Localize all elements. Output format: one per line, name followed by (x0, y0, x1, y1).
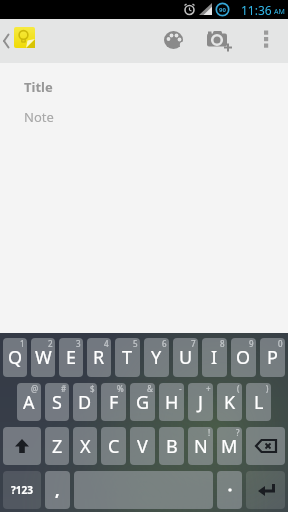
staticText: X (80, 434, 91, 459)
staticText: ! (208, 427, 211, 438)
staticText: 3 (76, 338, 81, 349)
staticText: D (78, 390, 92, 415)
button[interactable]: R (87, 338, 111, 377)
staticText: 2 (48, 338, 53, 349)
button[interactable]: J (188, 383, 213, 421)
staticText: ) (266, 383, 269, 394)
button[interactable]: Z (45, 427, 69, 465)
staticText: S (52, 390, 62, 415)
staticText: Title (24, 78, 53, 96)
button[interactable]: G (130, 383, 155, 421)
staticText: , (55, 479, 60, 501)
staticText: ? (236, 427, 240, 438)
staticText: B (166, 434, 178, 459)
staticText: + (206, 383, 211, 394)
staticText: 11:36 (241, 2, 272, 18)
staticText: W (35, 345, 52, 370)
button[interactable]: B (159, 427, 184, 465)
staticText: P (267, 345, 278, 370)
button[interactable] (13, 24, 39, 50)
staticText: & (147, 383, 153, 394)
button[interactable]: V (130, 427, 155, 465)
staticText: R (93, 345, 105, 370)
staticText: C (108, 434, 120, 459)
button[interactable]: U (173, 338, 198, 377)
staticText: 90 (219, 6, 226, 14)
button[interactable]: K (217, 383, 242, 421)
button[interactable]: I (202, 338, 227, 377)
staticText: 6 (162, 338, 167, 349)
button[interactable] (3, 427, 41, 465)
button[interactable]: D (73, 383, 97, 421)
staticText: - (179, 383, 182, 394)
button[interactable]: H (159, 383, 184, 421)
button[interactable]: C (101, 427, 126, 465)
staticText: F (109, 390, 119, 415)
staticText: ?123 (11, 483, 33, 497)
button[interactable]: M (217, 427, 242, 465)
button[interactable]: S (45, 383, 69, 421)
staticText: Note (24, 108, 54, 126)
button[interactable]: Q (3, 338, 27, 377)
staticText: $ (90, 383, 95, 394)
button[interactable] (246, 427, 285, 465)
button[interactable]: E (59, 338, 83, 377)
staticText: M (221, 434, 238, 459)
button[interactable]: X (73, 427, 97, 465)
staticText: 5 (133, 338, 138, 349)
staticText: E (66, 345, 77, 370)
button[interactable]: ?123 (3, 471, 41, 509)
button[interactable]: Y (144, 338, 169, 377)
staticText: G (136, 390, 150, 415)
button[interactable]: F (101, 383, 126, 421)
staticText: Z (52, 434, 63, 459)
button[interactable]: A (17, 383, 41, 421)
button[interactable]: T (115, 338, 140, 377)
staticText: J (198, 390, 203, 415)
staticText: H (165, 390, 179, 415)
staticText: Q (8, 345, 23, 370)
staticText: @ (31, 383, 39, 394)
staticText: N (194, 434, 208, 459)
staticText: 7 (191, 338, 196, 349)
button[interactable] (246, 471, 285, 509)
button[interactable]: W (31, 338, 55, 377)
button[interactable]: , (45, 471, 70, 509)
button[interactable] (204, 31, 234, 61)
staticText: 8 (220, 338, 225, 349)
staticText: ( (237, 383, 240, 394)
staticText: L (254, 390, 264, 415)
staticText: A (23, 390, 35, 415)
staticText: AM (274, 7, 285, 17)
button[interactable]: L (246, 383, 271, 421)
staticText: # (61, 383, 67, 394)
button[interactable]: O (231, 338, 256, 377)
staticText: 9 (249, 338, 254, 349)
button[interactable] (217, 471, 242, 509)
staticText: V (137, 434, 148, 459)
staticText: 4 (104, 338, 109, 349)
button[interactable]: N (188, 427, 213, 465)
button[interactable] (162, 30, 186, 54)
staticText: K (224, 390, 236, 415)
staticText: % (117, 383, 124, 394)
staticText: T (122, 345, 133, 370)
staticText: U (179, 345, 193, 370)
staticText: Y (151, 345, 162, 370)
staticText: O (236, 345, 251, 370)
staticText: I (211, 345, 218, 370)
staticText: 0 (278, 338, 283, 349)
staticText: 1 (20, 338, 25, 349)
button[interactable]: P (260, 338, 285, 377)
button[interactable] (254, 27, 280, 55)
